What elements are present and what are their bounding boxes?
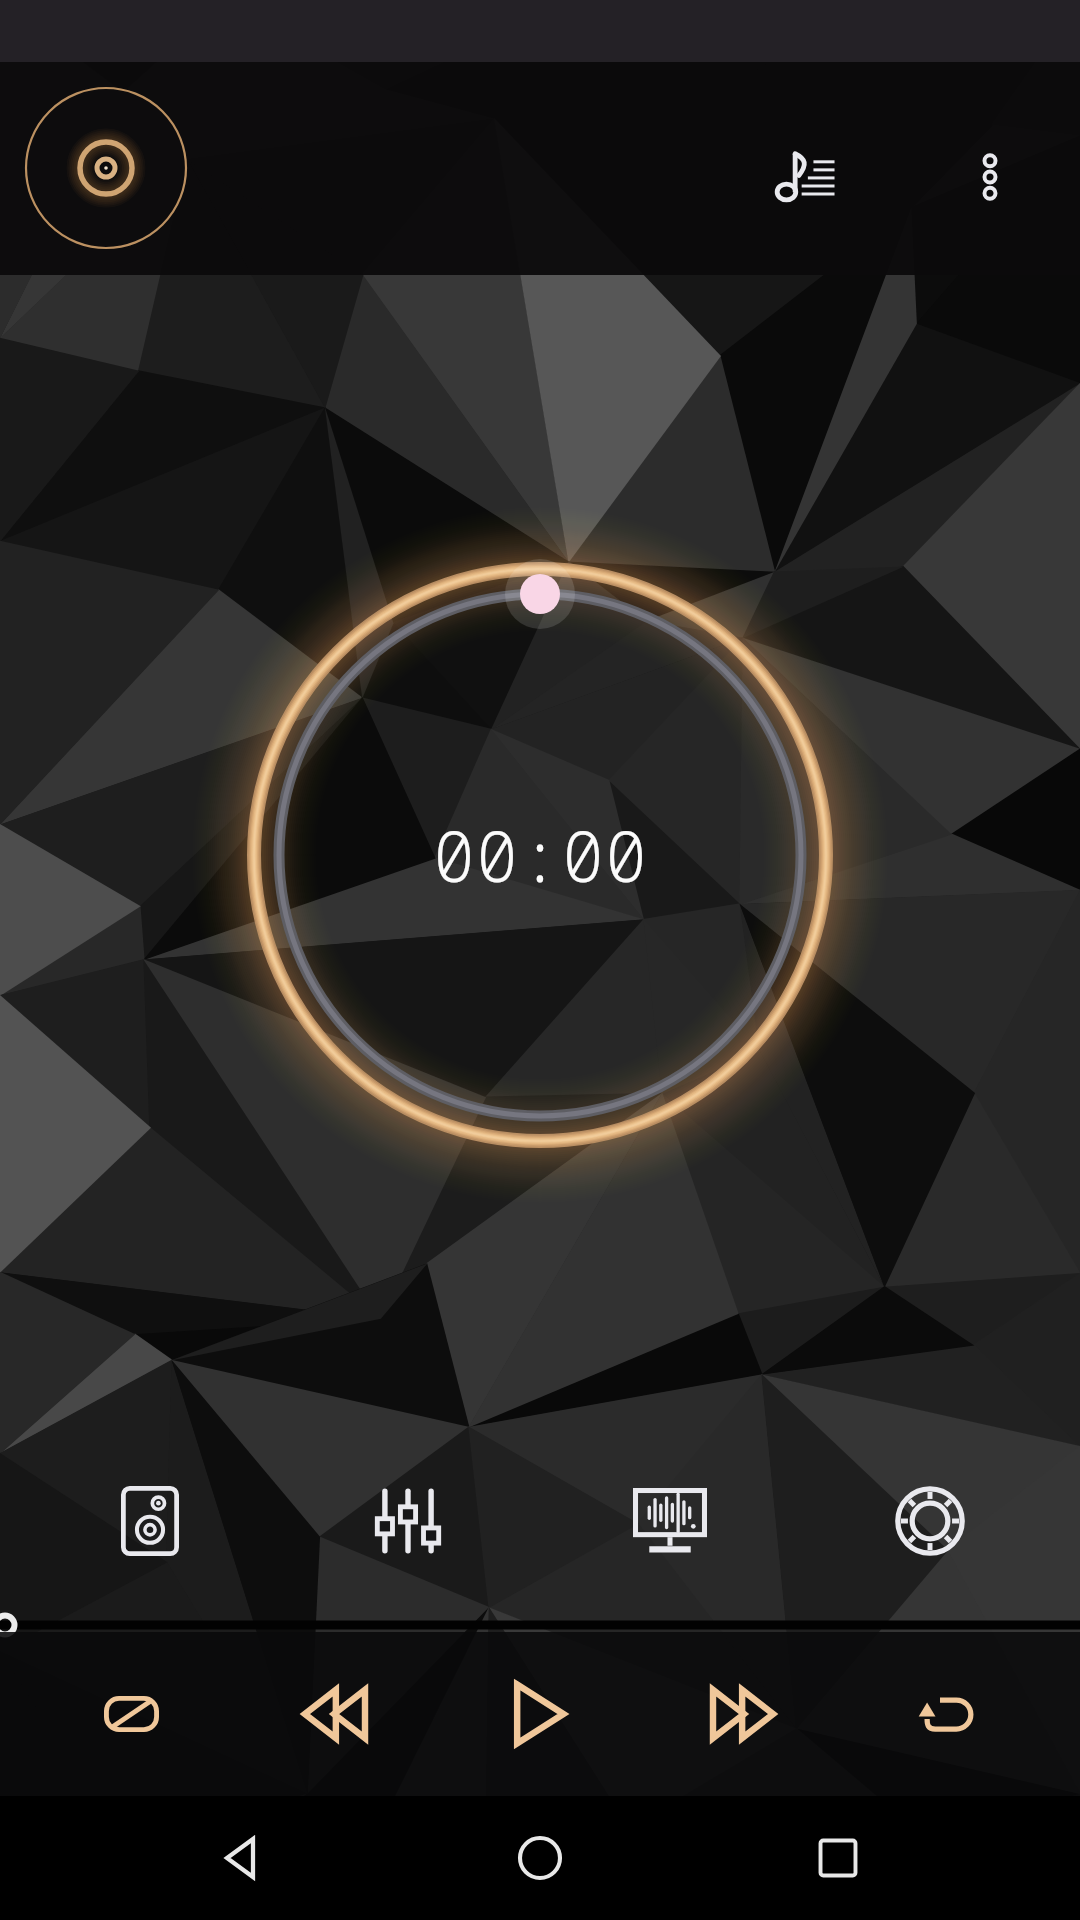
button[interactable]: Now playing xyxy=(22,84,190,252)
button[interactable]: Visualizer xyxy=(612,1461,728,1581)
staticText: 00:00 xyxy=(433,807,648,902)
button[interactable]: Home xyxy=(485,1803,595,1913)
button[interactable]: Sound effects xyxy=(872,1461,988,1581)
button[interactable]: Repeat xyxy=(886,1632,1006,1796)
button[interactable]: Recents xyxy=(783,1803,893,1913)
button[interactable]: Play xyxy=(480,1632,600,1796)
button[interactable]: Equalizer xyxy=(350,1461,466,1581)
button[interactable]: More options xyxy=(935,122,1045,232)
button[interactable]: Shuffle off xyxy=(71,1632,191,1796)
button[interactable]: Previous xyxy=(274,1632,394,1796)
button[interactable]: Playlist xyxy=(751,122,861,232)
button[interactable]: Speaker xyxy=(92,1461,208,1581)
button[interactable]: Back xyxy=(188,1803,298,1913)
button[interactable]: Next xyxy=(684,1632,804,1796)
